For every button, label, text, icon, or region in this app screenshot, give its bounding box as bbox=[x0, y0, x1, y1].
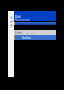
staticText: Recent mail bbox=[15, 18, 30, 22]
button[interactable]: Profile bbox=[10, 24, 13, 27]
button[interactable]: Drafts bbox=[14, 30, 56, 35]
staticText: 12 items bbox=[26, 31, 36, 34]
button[interactable]: Mail bbox=[14, 11, 56, 21]
button[interactable]: Search bbox=[10, 20, 13, 23]
staticText: Drafts bbox=[15, 31, 23, 35]
staticText: Archive bbox=[22, 36, 31, 40]
button[interactable] bbox=[14, 22, 56, 25]
button[interactable]: Archive bbox=[14, 35, 56, 40]
staticText: Mail bbox=[15, 15, 21, 19]
button[interactable]: Home bbox=[10, 16, 13, 19]
